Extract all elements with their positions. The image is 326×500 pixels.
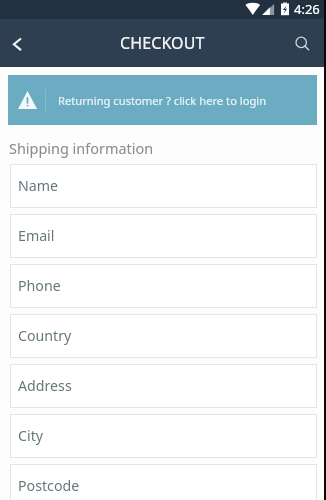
button[interactable]: Country (10, 314, 317, 358)
button[interactable]: Back (0, 19, 38, 67)
staticText: 4:26 (294, 0, 320, 18)
staticText: Email (18, 226, 55, 245)
button[interactable]: Email (10, 214, 317, 258)
staticText: City (18, 426, 43, 445)
staticText: Phone (18, 276, 61, 295)
button[interactable]: Postcode (10, 464, 317, 500)
staticText: Name (18, 176, 59, 195)
staticText: Postcode (18, 476, 80, 495)
button[interactable]: City (10, 414, 317, 458)
button[interactable]: Search (290, 19, 326, 67)
button[interactable]: Returning customer ? click here to login (8, 75, 317, 125)
staticText: Country (18, 326, 72, 345)
button[interactable]: Phone (10, 264, 317, 308)
button[interactable]: Address (10, 364, 317, 408)
staticText: Returning customer ? click here to login (58, 93, 267, 108)
staticText: Address (18, 376, 72, 395)
staticText: Shipping information (9, 139, 154, 158)
button[interactable]: Name (10, 164, 317, 208)
staticText: CHECKOUT (120, 32, 205, 54)
